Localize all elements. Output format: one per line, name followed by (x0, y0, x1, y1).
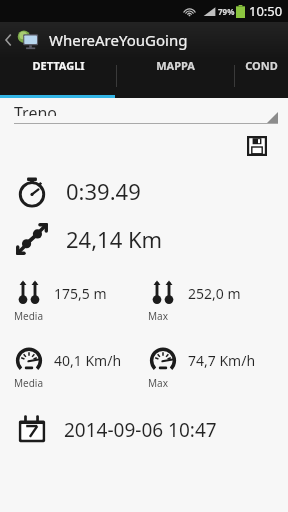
staticText: Max (148, 376, 168, 390)
button[interactable]: Treno (14, 98, 278, 124)
button[interactable]: DETTAGLI (0, 58, 116, 73)
staticText: WhereAreYouGoing (49, 30, 188, 50)
staticText: Max (148, 309, 168, 323)
button[interactable]: COND (235, 58, 288, 73)
button[interactable]: WhereAreYouGoing (0, 22, 288, 58)
staticText: 79% (218, 6, 235, 17)
staticText: 74,7 Km/h (188, 351, 256, 370)
staticText: COND (245, 58, 278, 73)
staticText: 10:50 (249, 2, 283, 20)
staticText: Media (14, 309, 44, 323)
staticText: 175,5 m (54, 284, 107, 303)
staticText: Media (14, 376, 44, 390)
staticText: 24,14 Km (66, 224, 163, 254)
staticText: 252,0 m (188, 284, 241, 303)
staticText: Treno (14, 102, 57, 116)
staticText: 0:39.49 (66, 176, 141, 206)
staticText: DETTAGLI (32, 58, 85, 73)
staticText: 2014-09-06 10:47 (64, 417, 217, 443)
button[interactable]: Save (242, 131, 272, 161)
staticText: MAPPA (156, 58, 195, 73)
staticText: 40,1 Km/h (54, 351, 122, 370)
button[interactable]: MAPPA (117, 58, 234, 73)
